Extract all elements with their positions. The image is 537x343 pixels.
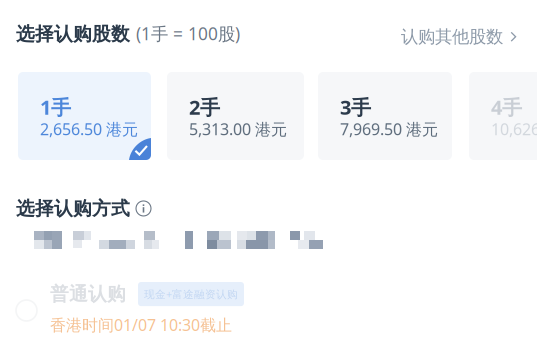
staticText: 认购其他股数	[401, 26, 503, 47]
button[interactable]: 1手	[18, 72, 151, 160]
button[interactable]: 2手	[167, 72, 304, 160]
button[interactable]: 4手	[469, 72, 537, 160]
staticText: 选择认购方式	[16, 197, 130, 220]
staticText: 7,969.50 港元	[340, 118, 438, 140]
staticText: 香港时间01/07 10:30截止	[50, 314, 232, 335]
staticText: 1手	[40, 94, 71, 120]
staticText: 选择认购股数	[16, 23, 130, 45]
button[interactable]: 3手	[318, 72, 452, 160]
staticText: 5,313.00 港元	[189, 118, 287, 140]
staticText: 4手	[491, 94, 522, 120]
staticText: (1手 = 100股)	[136, 22, 240, 45]
staticText: 现金+富途融资认购	[144, 287, 238, 301]
staticText: 普通认购	[50, 283, 126, 305]
button[interactable]: 认购其他股数	[401, 26, 517, 47]
staticText: 2手	[189, 94, 220, 120]
staticText: 10,626.00 港元	[491, 118, 537, 140]
staticText: 3手	[340, 94, 371, 120]
button[interactable]: 普通认购	[0, 276, 537, 343]
staticText: 2,656.50 港元	[40, 118, 138, 140]
